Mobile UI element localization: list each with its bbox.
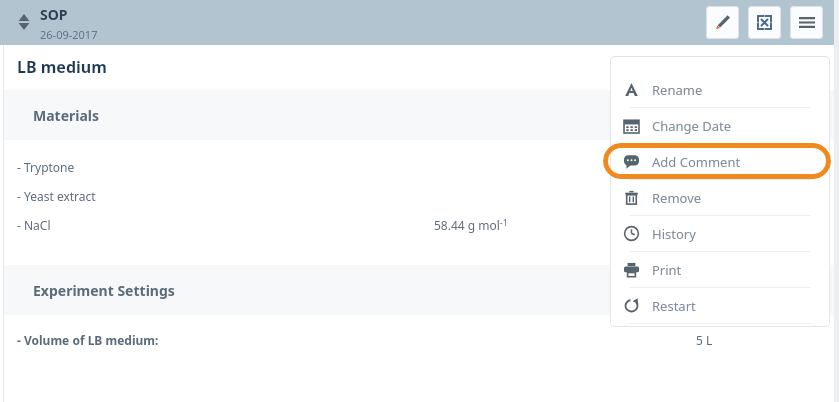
staticText: Print xyxy=(652,261,682,279)
staticText: 26-09-2017 xyxy=(40,27,98,42)
button[interactable]: History xyxy=(610,216,830,251)
staticText: - NaCl xyxy=(17,217,51,233)
button[interactable]: Remove xyxy=(610,180,830,215)
staticText: LB medium xyxy=(17,56,107,78)
button[interactable]: Rename xyxy=(610,72,830,107)
staticText: SOP xyxy=(40,5,68,24)
button[interactable]: Add Comment highlighted xyxy=(603,143,831,179)
button[interactable]: Reorder xyxy=(16,12,32,32)
staticText: Add Comment xyxy=(652,153,741,171)
staticText: - Volume of LB medium: xyxy=(17,332,159,348)
staticText: 58.44 g mol-1 xyxy=(434,216,508,234)
button[interactable]: Add Comment xyxy=(610,144,830,179)
staticText: Materials xyxy=(33,106,100,125)
button[interactable]: Expand xyxy=(748,6,781,39)
button[interactable]: Restart xyxy=(610,288,830,323)
staticText: History xyxy=(652,225,696,243)
staticText: - Yeast extract xyxy=(17,188,96,204)
button[interactable]: Edit xyxy=(706,6,739,39)
button[interactable]: Change Date xyxy=(610,108,830,143)
staticText: Change Date xyxy=(652,117,732,135)
staticText: Remove xyxy=(652,189,702,207)
staticText: Rename xyxy=(652,81,703,99)
button[interactable]: Menu xyxy=(790,6,823,39)
staticText: Restart xyxy=(652,297,696,315)
staticText: 5 L xyxy=(696,332,713,348)
staticText: - Tryptone xyxy=(17,159,75,175)
staticText: Experiment Settings xyxy=(33,281,175,300)
button[interactable]: Print xyxy=(610,252,830,287)
